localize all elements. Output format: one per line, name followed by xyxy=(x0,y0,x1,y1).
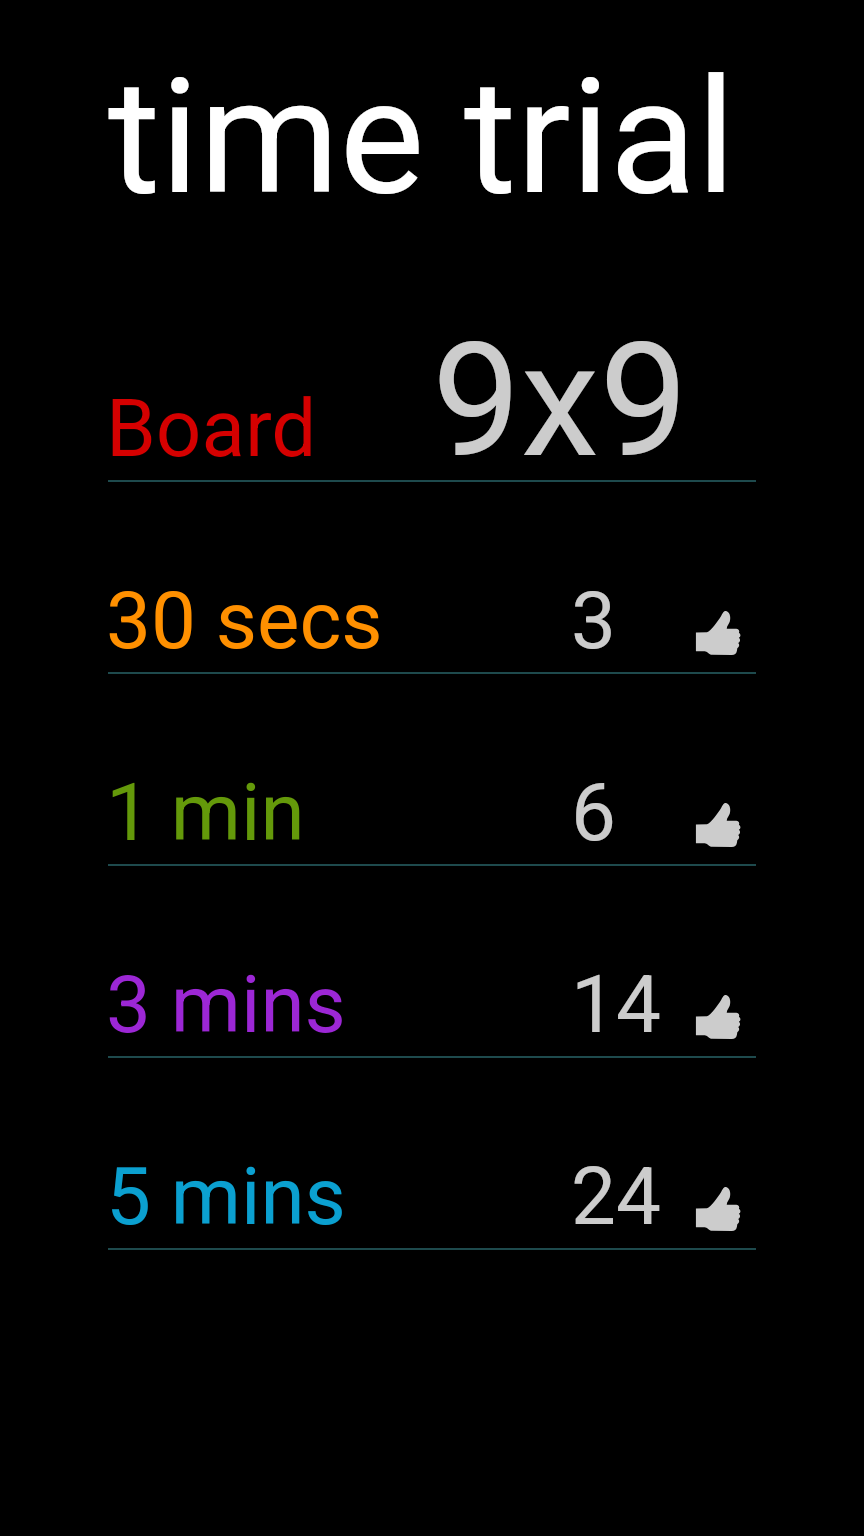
staticText: 6 xyxy=(571,766,616,860)
other: Like xyxy=(695,994,741,1040)
button[interactable]: Board xyxy=(0,290,864,482)
button[interactable]: 1 min xyxy=(0,674,864,866)
other: Like xyxy=(695,802,741,848)
staticText: 30 secs xyxy=(106,574,383,668)
staticText: time trial xyxy=(108,44,736,232)
staticText: 3 mins xyxy=(106,958,346,1052)
staticText: Board xyxy=(106,382,317,476)
staticText: 1 min xyxy=(106,766,305,860)
button[interactable]: 5 mins xyxy=(0,1058,864,1250)
staticText: 9x9 xyxy=(432,308,688,493)
button[interactable]: 3 mins xyxy=(0,866,864,1058)
button[interactable]: 30 secs xyxy=(0,482,864,674)
staticText: 3 xyxy=(571,574,616,668)
staticText: 24 xyxy=(571,1150,661,1244)
staticText: 5 mins xyxy=(106,1150,346,1244)
other: Like xyxy=(695,610,741,656)
other: Like xyxy=(695,1186,741,1232)
staticText: 14 xyxy=(571,958,661,1052)
